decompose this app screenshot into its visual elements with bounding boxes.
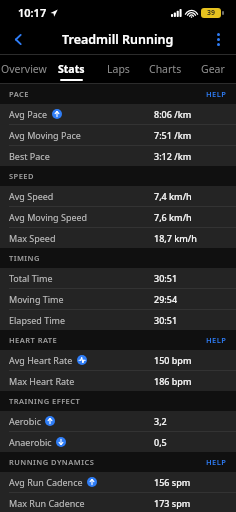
staticText: Anaerobic [9, 436, 52, 448]
button[interactable]: Max Run Cadence [0, 493, 236, 512]
button[interactable]: Overview [0, 55, 48, 83]
staticText: Avg Moving Speed [9, 211, 88, 223]
button[interactable]: Gear [189, 55, 236, 83]
staticText: Gear [201, 62, 225, 76]
staticText: PACE [9, 89, 29, 99]
staticText: Max Heart Rate [9, 375, 75, 387]
staticText: Max Run Cadence [9, 497, 85, 509]
button[interactable]: Back [5, 26, 32, 53]
staticText: Max Speed [9, 232, 56, 244]
staticText: 30:51 [154, 272, 178, 284]
staticText: Avg Moving Pace [9, 129, 81, 141]
button[interactable]: Total Time [0, 268, 236, 288]
staticText: Stats [58, 62, 85, 76]
staticText: 7,4 km/h [154, 190, 192, 202]
staticText: Total Time [9, 272, 53, 284]
staticText: SPEED [9, 171, 34, 181]
staticText: 3,2 [154, 415, 167, 427]
staticText: Avg Run Cadence [9, 476, 83, 488]
button[interactable]: Avg Pace [0, 104, 236, 124]
button[interactable]: HELP [197, 84, 236, 104]
staticText: 30:51 [154, 314, 178, 326]
button[interactable]: Aerobic [0, 411, 236, 431]
staticText: HELP [206, 457, 227, 467]
staticText: Elapsed Time [9, 314, 65, 326]
staticText: RUNNING DYNAMICS [9, 457, 95, 467]
staticText: 29:54 [154, 293, 178, 305]
staticText: 18,7 km/h [154, 232, 197, 244]
staticText: Avg Heart Rate [9, 354, 73, 366]
button[interactable]: Max Speed [0, 228, 236, 248]
button[interactable]: Avg Run Cadence [0, 472, 236, 492]
staticText: Treadmill Running [62, 31, 174, 48]
button[interactable]: Elapsed Time [0, 310, 236, 330]
button[interactable]: Avg Speed [0, 186, 236, 206]
staticText: 7,6 km/h [154, 211, 192, 223]
staticText: 7:51 /km [154, 129, 192, 141]
staticText: HELP [206, 89, 227, 99]
button[interactable]: Anaerobic [0, 432, 236, 452]
staticText: Moving Time [9, 293, 64, 305]
button[interactable]: More options [206, 27, 231, 52]
staticText: HELP [206, 335, 227, 345]
button[interactable]: Avg Moving Pace [0, 125, 236, 145]
button[interactable]: Moving Time [0, 289, 236, 309]
staticText: TIMING [9, 253, 40, 263]
staticText: HEART RATE [9, 335, 58, 345]
staticText: Aerobic [9, 415, 41, 427]
staticText: 3:12 /km [154, 150, 192, 162]
staticText: 186 bpm [154, 375, 192, 387]
button[interactable]: HELP [197, 452, 236, 472]
staticText: 0,5 [154, 436, 167, 448]
staticText: Laps [107, 62, 130, 76]
staticText: 173 spm [154, 497, 191, 509]
button[interactable]: Stats [48, 55, 95, 83]
staticText: Avg Pace [9, 108, 48, 120]
staticText: TRAINING EFFECT [9, 396, 81, 406]
staticText: Avg Speed [9, 190, 54, 202]
staticText: 156 spm [154, 476, 191, 488]
staticText: Overview [1, 62, 47, 76]
staticText: 10:17 [18, 5, 47, 20]
button[interactable]: Avg Moving Speed [0, 207, 236, 227]
button[interactable]: HELP [197, 330, 236, 350]
button[interactable]: Laps [95, 55, 142, 83]
staticText: 8:06 /km [154, 108, 192, 120]
staticText: 39 [207, 8, 216, 18]
staticText: Charts [149, 62, 182, 76]
staticText: Best Pace [9, 150, 50, 162]
staticText: 150 bpm [154, 354, 192, 366]
button[interactable]: Max Heart Rate [0, 371, 236, 391]
button[interactable]: Avg Heart Rate [0, 350, 236, 370]
button[interactable]: Best Pace [0, 146, 236, 166]
button[interactable]: Charts [142, 55, 189, 83]
